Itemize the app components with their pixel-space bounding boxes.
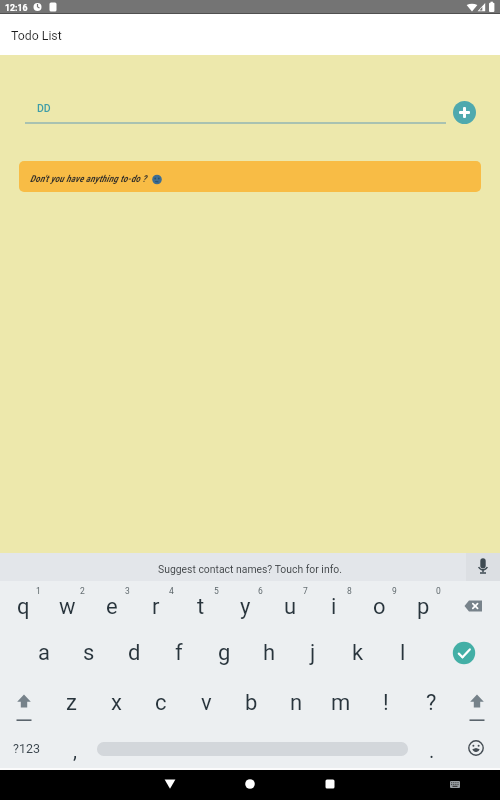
staticText: c (155, 690, 167, 716)
staticText: f (175, 640, 183, 666)
staticText: w (59, 594, 76, 620)
staticText: , (73, 739, 77, 762)
button[interactable]: k (336, 633, 380, 673)
button[interactable]: g (202, 633, 246, 673)
button[interactable] (466, 553, 500, 581)
staticText: n (290, 690, 303, 716)
button[interactable]: q (1, 587, 45, 627)
button[interactable] (0, 553, 500, 581)
button[interactable]: n (274, 683, 318, 723)
button[interactable] (316, 770, 344, 798)
staticText: 6 (258, 586, 263, 596)
button[interactable]: p (401, 587, 445, 627)
button[interactable]: r (134, 587, 178, 627)
button[interactable]: s (67, 633, 111, 673)
button[interactable]: i (312, 587, 356, 627)
button[interactable] (443, 772, 467, 796)
button[interactable]: u (268, 587, 312, 627)
staticText: Don't you have anything to-do ? (30, 173, 147, 184)
button[interactable]: ? (409, 683, 453, 723)
button[interactable] (453, 101, 476, 124)
staticText: 8 (347, 586, 352, 596)
button[interactable]: j (291, 633, 335, 673)
staticText: m (331, 690, 351, 716)
staticText: v (201, 690, 212, 716)
staticText: 1 (36, 586, 41, 596)
staticText: o (373, 594, 386, 620)
staticText: 0 (436, 586, 441, 596)
button[interactable]: v (184, 683, 228, 723)
staticText: DD (37, 102, 51, 114)
button[interactable]: e (90, 587, 134, 627)
staticText: ?123 (13, 741, 40, 756)
button[interactable]: m (319, 683, 363, 723)
staticText: y (240, 594, 251, 620)
button[interactable]: t (179, 587, 223, 627)
staticText: 9 (392, 586, 397, 596)
button[interactable]: z (49, 683, 93, 723)
staticText: z (66, 690, 77, 716)
staticText: k (352, 640, 364, 666)
button[interactable]: , (60, 735, 90, 765)
button[interactable]: h (247, 633, 291, 673)
staticText: p (417, 594, 430, 620)
button[interactable]: x (94, 683, 138, 723)
button[interactable] (2, 679, 46, 723)
staticText: 7 (303, 586, 308, 596)
staticText: u (284, 594, 297, 620)
staticText: e (106, 594, 118, 620)
button[interactable] (455, 679, 499, 723)
staticText: . (429, 739, 435, 762)
button[interactable]: y (223, 587, 267, 627)
staticText: 2 (80, 586, 85, 596)
button[interactable] (446, 635, 482, 671)
staticText: s (83, 640, 95, 666)
button[interactable]: c (139, 683, 183, 723)
staticText: 12:16 (5, 3, 28, 13)
staticText: ! (383, 690, 389, 716)
button[interactable] (156, 769, 184, 797)
staticText: r (152, 594, 160, 620)
button[interactable] (461, 733, 491, 763)
button[interactable]: ! (364, 683, 408, 723)
button[interactable]: Don't you have anything to-do ? (19, 161, 481, 192)
staticText: Suggest contact names? Touch for info. (158, 563, 342, 575)
button[interactable]: f (157, 633, 201, 673)
button[interactable]: l (381, 633, 425, 673)
staticText: g (218, 640, 231, 666)
staticText: ? (426, 690, 437, 716)
staticText: h (263, 640, 276, 666)
button[interactable] (236, 770, 264, 798)
staticText: a (38, 640, 50, 666)
staticText: l (400, 640, 406, 666)
staticText: q (17, 594, 30, 620)
button[interactable]: ?123 (4, 733, 48, 763)
staticText: j (310, 640, 316, 666)
staticText: 5 (214, 586, 219, 596)
button[interactable]: o (357, 587, 401, 627)
button[interactable]: d (112, 633, 156, 673)
button[interactable]: . (417, 735, 447, 765)
staticText: Todo List (11, 29, 62, 43)
staticText: 3 (125, 586, 130, 596)
staticText: i (331, 594, 337, 620)
button[interactable]: b (229, 683, 273, 723)
staticText: d (128, 640, 141, 666)
button[interactable]: a (22, 633, 66, 673)
staticText: 4 (169, 586, 174, 596)
button[interactable]: w (45, 587, 89, 627)
staticText: x (111, 690, 122, 716)
staticText: t (197, 594, 205, 620)
staticText: b (245, 690, 258, 716)
button[interactable] (457, 588, 493, 624)
